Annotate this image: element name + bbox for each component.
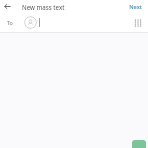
staticText: New mass text bbox=[22, 3, 65, 11]
button[interactable]: Recipient chip bbox=[24, 16, 37, 29]
button[interactable]: Send bbox=[132, 140, 146, 148]
staticText: Next bbox=[129, 3, 142, 11]
button[interactable]: Open dialpad bbox=[131, 16, 145, 30]
button[interactable]: Next bbox=[123, 0, 148, 13]
staticText: To bbox=[7, 19, 13, 26]
button[interactable]: Back bbox=[1, 0, 14, 13]
